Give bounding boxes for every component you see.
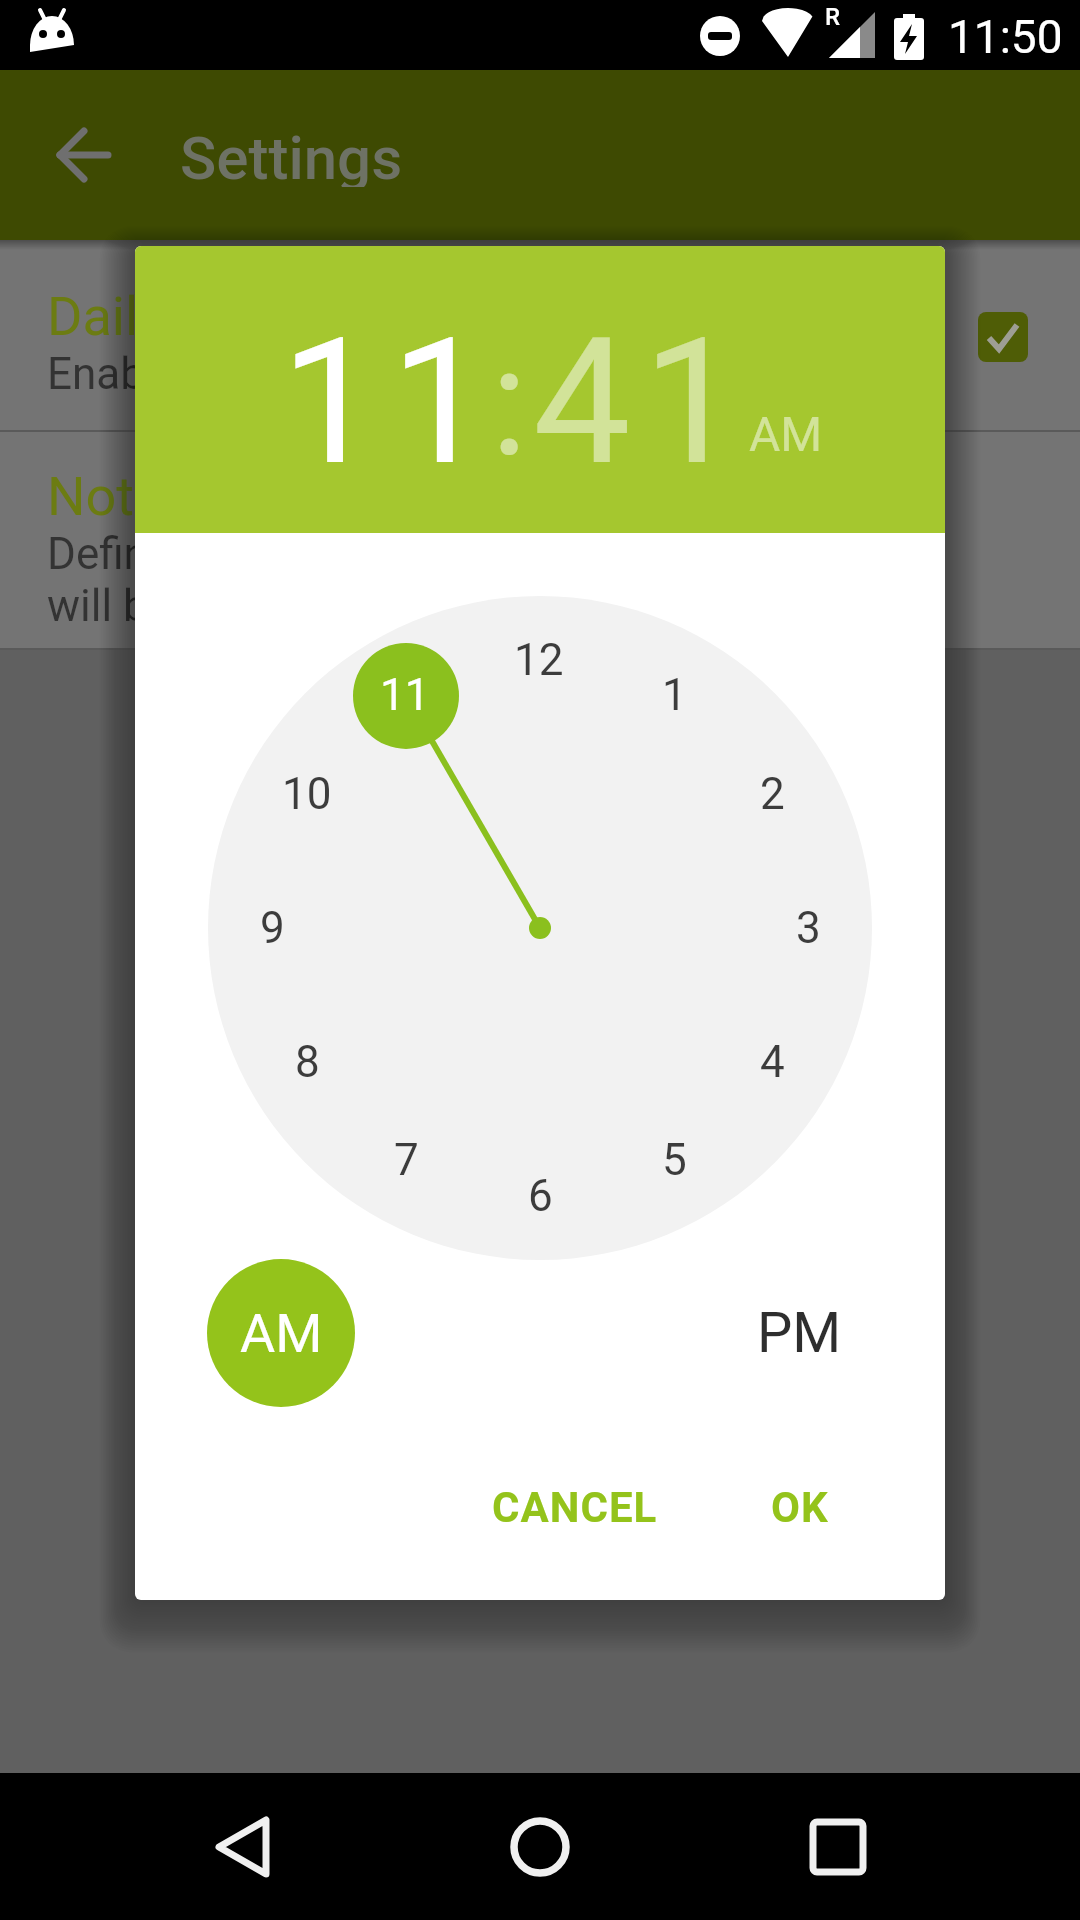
- staticText: PM: [757, 1300, 842, 1366]
- staticText: 6: [528, 1170, 553, 1222]
- button[interactable]: [480, 1793, 600, 1903]
- staticText: 3: [796, 902, 821, 954]
- staticText: CANCEL: [492, 1483, 658, 1532]
- button[interactable]: PM: [725, 1259, 873, 1407]
- staticText: 12: [514, 634, 564, 686]
- staticText: 10: [282, 768, 332, 820]
- button[interactable]: AM: [207, 1259, 355, 1407]
- staticText: 4: [760, 1036, 785, 1088]
- staticText: Notification time: [47, 465, 447, 528]
- staticText: 41: [533, 301, 753, 505]
- staticText: 11:50: [948, 10, 1063, 60]
- button[interactable]: [58, 128, 110, 182]
- staticText: Enables the daily training reminder: [47, 348, 720, 400]
- staticText: Define at which time the training notifi…: [47, 528, 907, 580]
- staticText: 11: [380, 669, 430, 721]
- button[interactable]: [780, 1793, 900, 1903]
- button[interactable]: [180, 1793, 300, 1903]
- staticText: OK: [771, 1483, 829, 1532]
- staticText: AM: [749, 406, 823, 462]
- staticText: AM: [240, 1302, 323, 1365]
- staticText: 9: [260, 902, 285, 954]
- button[interactable]: CANCEL: [465, 1457, 685, 1557]
- staticText: 7: [394, 1134, 419, 1186]
- staticText: will be shown: [47, 580, 312, 632]
- staticText: 11: [281, 301, 501, 505]
- button[interactable]: OK: [715, 1457, 885, 1557]
- staticText: Daily training reminder: [47, 285, 586, 348]
- staticText: Settings: [180, 123, 403, 187]
- staticText: 2: [760, 768, 785, 820]
- staticText: R: [825, 3, 840, 31]
- button[interactable]: [978, 312, 1028, 362]
- staticText: 5: [662, 1134, 687, 1186]
- staticText: 1: [662, 669, 687, 721]
- staticText: 8: [295, 1036, 320, 1088]
- staticText: :: [491, 315, 528, 491]
- button[interactable]: 11: [241, 298, 541, 508]
- button[interactable]: 41: [533, 298, 753, 508]
